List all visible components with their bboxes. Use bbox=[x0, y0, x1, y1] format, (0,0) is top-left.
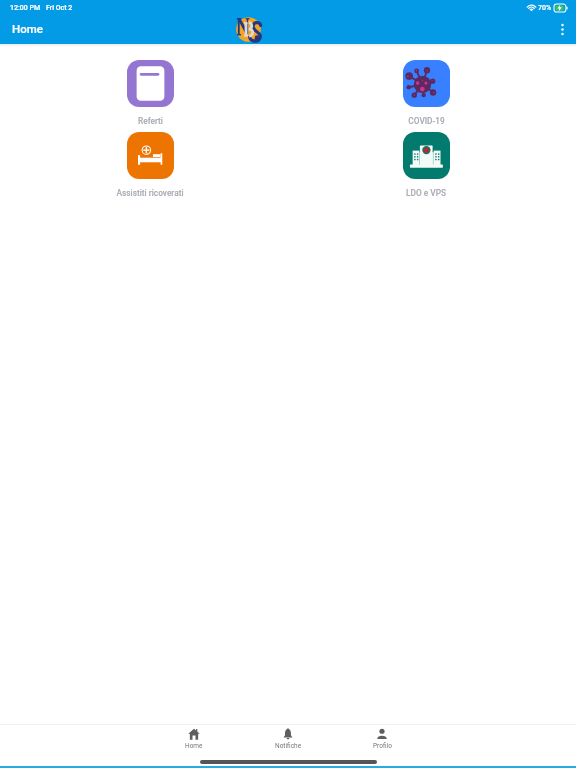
button[interactable]: Assistiti ricoverati bbox=[12, 132, 288, 198]
button[interactable]: Profilo bbox=[335, 728, 429, 750]
staticText: Assistiti ricoverati bbox=[116, 188, 184, 198]
staticText: Fri Oct 2 bbox=[46, 4, 73, 12]
staticText: Referti bbox=[138, 116, 163, 126]
staticText: Profilo bbox=[373, 742, 392, 750]
button[interactable]: LDO e VPS bbox=[288, 132, 564, 198]
staticText: Notifiche bbox=[275, 742, 302, 750]
staticText: Home bbox=[12, 22, 43, 35]
staticText: 12:00 PM bbox=[10, 4, 41, 12]
button[interactable]: More options bbox=[549, 16, 575, 42]
staticText: LDO e VPS bbox=[406, 188, 446, 198]
button[interactable]: COVID-19 bbox=[288, 60, 564, 126]
button[interactable]: Notifiche bbox=[241, 728, 335, 750]
button[interactable]: Home bbox=[147, 728, 241, 750]
staticText: COVID-19 bbox=[408, 116, 445, 126]
button[interactable]: Referti bbox=[12, 60, 288, 126]
staticText: 70% bbox=[538, 4, 552, 12]
staticText: Home bbox=[185, 742, 203, 750]
